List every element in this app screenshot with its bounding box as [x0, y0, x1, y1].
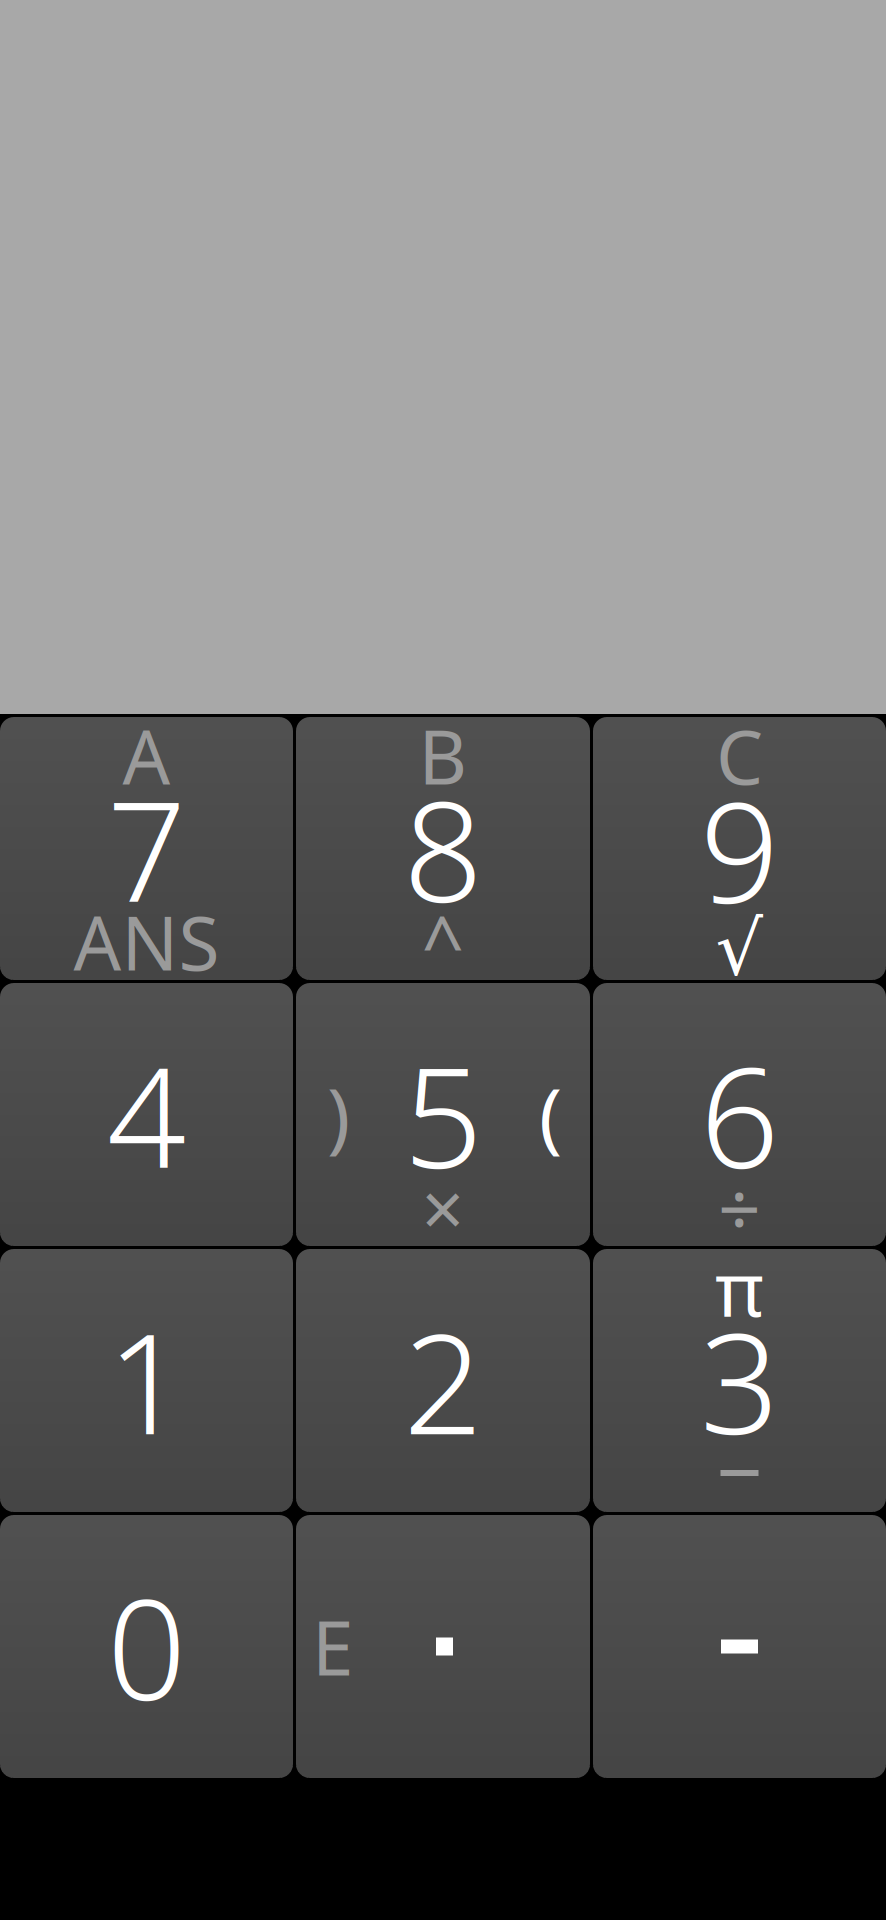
staticText: E: [312, 1597, 354, 1696]
staticText: ÷: [718, 1158, 761, 1257]
button[interactable]: Decimal point: [296, 1515, 590, 1778]
button[interactable]: 2: [296, 1249, 590, 1512]
button[interactable]: 0: [0, 1515, 293, 1778]
staticText: 8: [403, 756, 482, 940]
button[interactable]: 5: [296, 983, 590, 1246]
button[interactable]: 3: [593, 1249, 886, 1512]
button[interactable]: 8: [296, 717, 590, 980]
staticText: 6: [700, 1022, 779, 1206]
staticText: B: [418, 706, 467, 805]
button[interactable]: 4: [0, 983, 293, 1246]
staticText: A: [122, 706, 170, 805]
staticText: 4: [107, 1022, 186, 1206]
staticText: (: [539, 1063, 562, 1166]
button[interactable]: 6: [593, 983, 886, 1246]
staticText: ANS: [73, 892, 219, 991]
staticText: ×: [421, 1158, 464, 1257]
staticText: 5: [403, 1022, 482, 1206]
staticText: 9: [700, 756, 779, 940]
staticText: C: [716, 706, 763, 805]
button[interactable]: Minus: [593, 1515, 886, 1778]
staticText: √: [715, 906, 763, 991]
staticText: 2: [403, 1288, 482, 1472]
button[interactable]: 9: [593, 717, 886, 980]
staticText: ^: [421, 892, 464, 991]
button[interactable]: 7: [0, 717, 293, 980]
staticText: 1: [107, 1288, 186, 1472]
button[interactable]: 1: [0, 1249, 293, 1512]
staticText: 3: [700, 1288, 779, 1472]
staticText: π: [715, 1238, 764, 1337]
staticText: 0: [107, 1554, 186, 1738]
staticText: ): [327, 1063, 350, 1166]
staticText: 7: [107, 756, 186, 940]
